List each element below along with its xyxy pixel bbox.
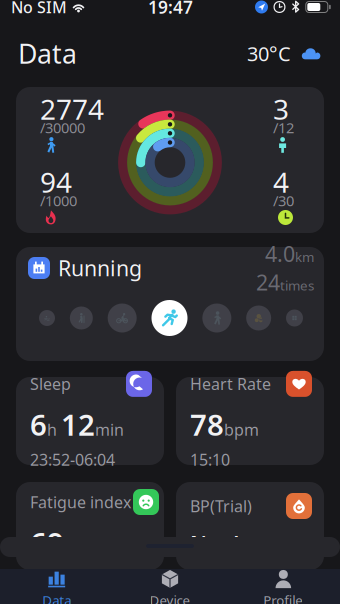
staticText: km bbox=[295, 248, 314, 266]
staticText: Fatigue index bbox=[30, 491, 131, 513]
staticText: /1000 bbox=[40, 191, 77, 210]
staticText: min bbox=[95, 419, 124, 440]
button[interactable]: Device bbox=[113, 562, 227, 604]
button[interactable]: Profile bbox=[227, 562, 340, 604]
staticText: Sleep bbox=[30, 373, 71, 394]
staticText: 4.0 bbox=[265, 240, 295, 268]
staticText: Data bbox=[18, 36, 77, 71]
staticText: Heart Rate bbox=[190, 373, 271, 394]
staticText: 3 bbox=[273, 90, 289, 128]
staticText: 23:52-06:04 bbox=[30, 449, 115, 470]
staticText: h bbox=[47, 419, 57, 440]
staticText: 4 bbox=[273, 163, 289, 201]
staticText: 24 bbox=[256, 268, 280, 296]
staticText: 6 bbox=[30, 405, 47, 444]
staticText: 19:47 bbox=[148, 0, 193, 18]
staticText: No SIM bbox=[11, 0, 67, 18]
staticText: 78 bbox=[190, 405, 224, 444]
staticText: /30 bbox=[273, 191, 294, 210]
staticText: 15:10 bbox=[190, 449, 230, 470]
staticText: Device bbox=[149, 591, 190, 604]
staticText: bpm bbox=[224, 419, 259, 440]
staticText: /30000 bbox=[40, 118, 85, 137]
staticText: Data bbox=[42, 591, 71, 604]
staticText: times bbox=[280, 276, 314, 294]
button[interactable]: Data bbox=[0, 562, 113, 604]
staticText: 94 bbox=[40, 163, 72, 201]
staticText: 69 bbox=[30, 523, 64, 562]
staticText: Profile bbox=[263, 591, 303, 604]
staticText: /12 bbox=[273, 118, 294, 137]
staticText: No data bbox=[190, 530, 272, 558]
staticText: BP(Trial) bbox=[190, 495, 252, 517]
staticText: Running bbox=[58, 254, 142, 282]
staticText: 30°C bbox=[247, 40, 291, 67]
staticText: 12 bbox=[61, 405, 95, 444]
staticText: 2774 bbox=[40, 90, 104, 128]
